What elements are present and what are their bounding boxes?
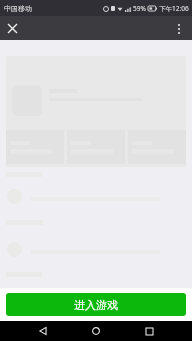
button[interactable]: More options (169, 19, 188, 38)
staticText: 进入游戏 (74, 298, 118, 312)
button[interactable]: Close (3, 19, 22, 38)
staticText: 59% (133, 4, 146, 13)
staticText: 中国移动 (4, 4, 32, 13)
button[interactable]: 进入游戏 (6, 293, 186, 316)
button[interactable]: Back (33, 321, 53, 341)
staticText: 下午12:06 (159, 4, 189, 13)
button[interactable]: Home (86, 321, 106, 341)
button[interactable]: Recents (139, 321, 159, 341)
